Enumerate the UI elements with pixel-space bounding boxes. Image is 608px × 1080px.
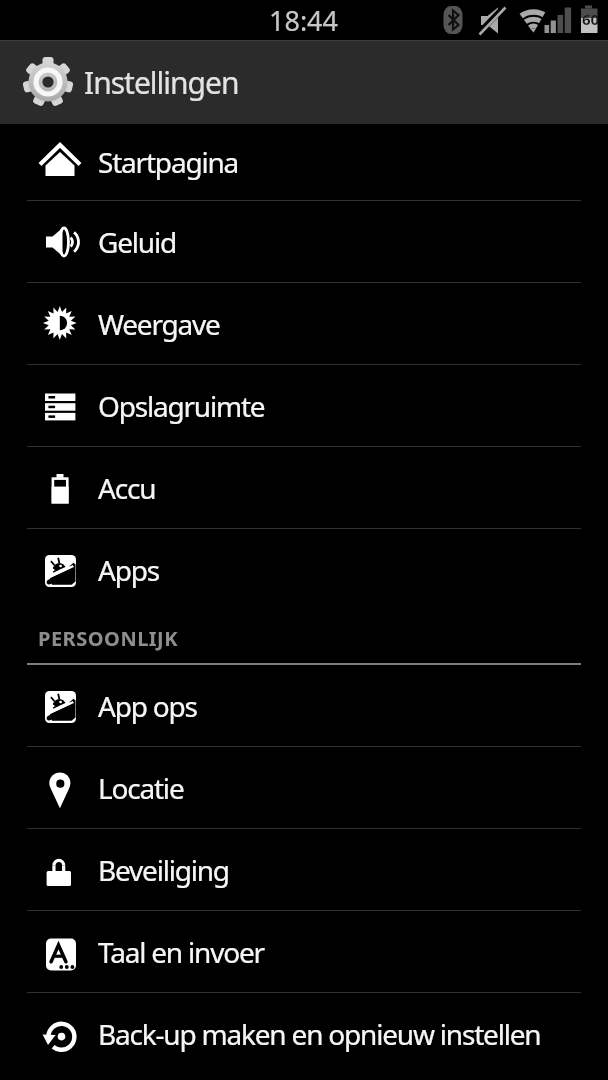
button[interactable]: Beveiliging — [0, 829, 608, 910]
staticText: Instellingen — [84, 62, 239, 103]
button[interactable]: Startpagina — [0, 124, 608, 200]
button[interactable]: Back-up maken en opnieuw instellen — [0, 993, 608, 1075]
staticText: Taal en invoer — [98, 933, 264, 971]
staticText: App ops — [98, 687, 197, 725]
staticText: Locatie — [98, 769, 184, 807]
button[interactable]: App ops — [0, 665, 608, 746]
staticText: Opslagruimte — [98, 387, 265, 425]
button[interactable]: Apps — [0, 529, 608, 611]
staticText: Startpagina — [98, 143, 239, 181]
staticText: Apps — [98, 551, 159, 589]
staticText: Weergave — [98, 305, 220, 343]
staticText: PERSOONLIJK — [38, 625, 179, 652]
button[interactable]: Opslagruimte — [0, 365, 608, 446]
button[interactable]: Weergave — [0, 283, 608, 364]
button[interactable]: Accu — [0, 447, 608, 528]
button[interactable]: Geluid — [0, 201, 608, 282]
staticText: Accu — [98, 469, 156, 507]
button[interactable]: Taal en invoer — [0, 911, 608, 992]
staticText: 60 — [582, 9, 600, 29]
staticText: Back-up maken en opnieuw instellen — [98, 1015, 541, 1053]
staticText: Geluid — [98, 223, 176, 261]
staticText: Beveiliging — [98, 851, 229, 889]
staticText: 18:44 — [269, 2, 339, 39]
button[interactable]: Locatie — [0, 747, 608, 828]
